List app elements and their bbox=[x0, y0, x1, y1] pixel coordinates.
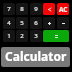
staticText: 7 bbox=[7, 4, 11, 12]
button[interactable]: Calculator bbox=[1, 47, 70, 67]
button[interactable]: 2 bbox=[16, 30, 28, 42]
button[interactable]: AC bbox=[57, 3, 69, 15]
button[interactable]: 7 bbox=[3, 3, 15, 15]
staticText: Calculator bbox=[5, 48, 67, 64]
button[interactable]: 8 bbox=[16, 3, 28, 15]
button[interactable]: 6 bbox=[30, 17, 42, 29]
button[interactable]: Backspace bbox=[43, 3, 55, 15]
button[interactable]: 1 bbox=[3, 30, 15, 42]
staticText: 2 bbox=[20, 31, 24, 39]
button[interactable]: 9 bbox=[30, 3, 42, 15]
staticText: 1 bbox=[7, 31, 11, 39]
staticText: 6 bbox=[34, 18, 38, 26]
button[interactable]: 4 bbox=[3, 17, 15, 29]
staticText: 4 bbox=[7, 18, 11, 26]
button[interactable]: Equals bbox=[43, 30, 69, 42]
button[interactable]: 3 bbox=[30, 30, 42, 42]
staticText: AC bbox=[59, 5, 68, 14]
staticText: 9 bbox=[34, 4, 38, 12]
staticText: 5 bbox=[20, 18, 24, 26]
button[interactable]: Plus bbox=[43, 17, 55, 29]
button[interactable]: Minus bbox=[57, 17, 69, 29]
button[interactable]: 5 bbox=[16, 17, 28, 29]
staticText: 3 bbox=[34, 31, 38, 39]
staticText: 8 bbox=[20, 4, 24, 12]
